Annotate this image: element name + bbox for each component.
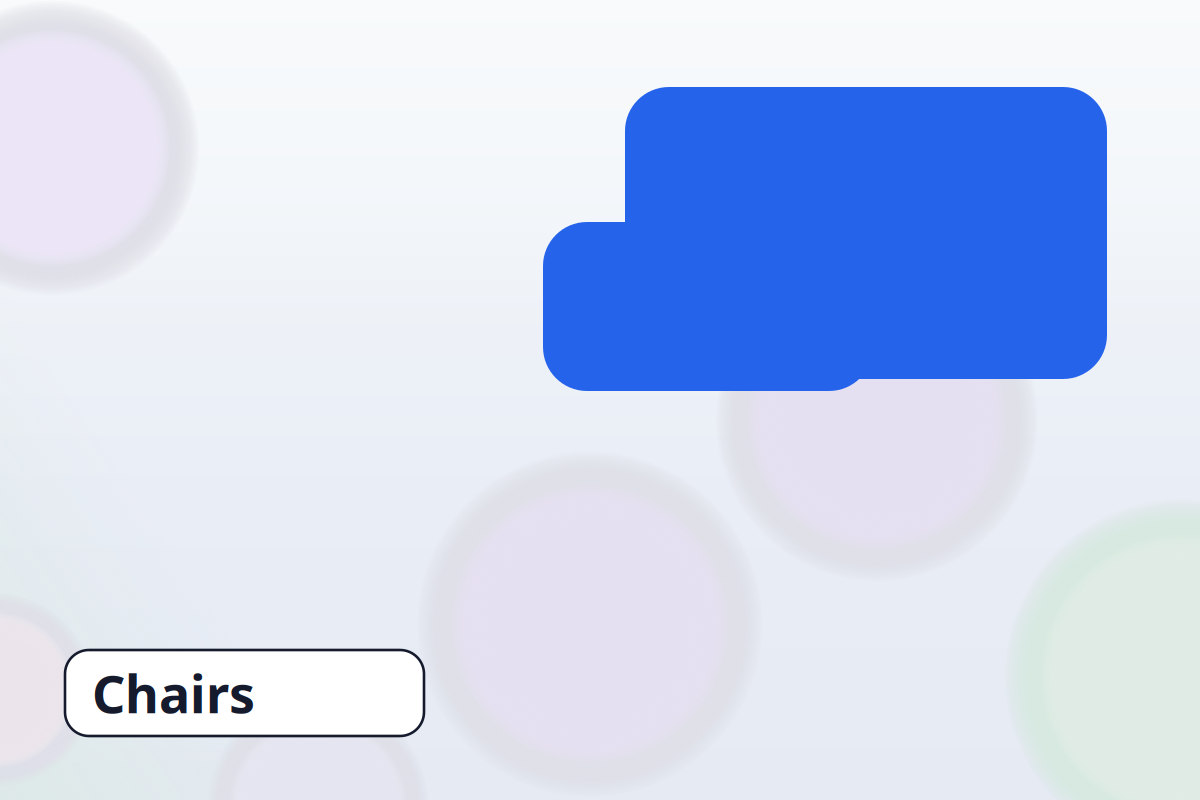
button[interactable]: Chairs [65, 650, 424, 736]
staticText: Chairs [92, 658, 255, 728]
